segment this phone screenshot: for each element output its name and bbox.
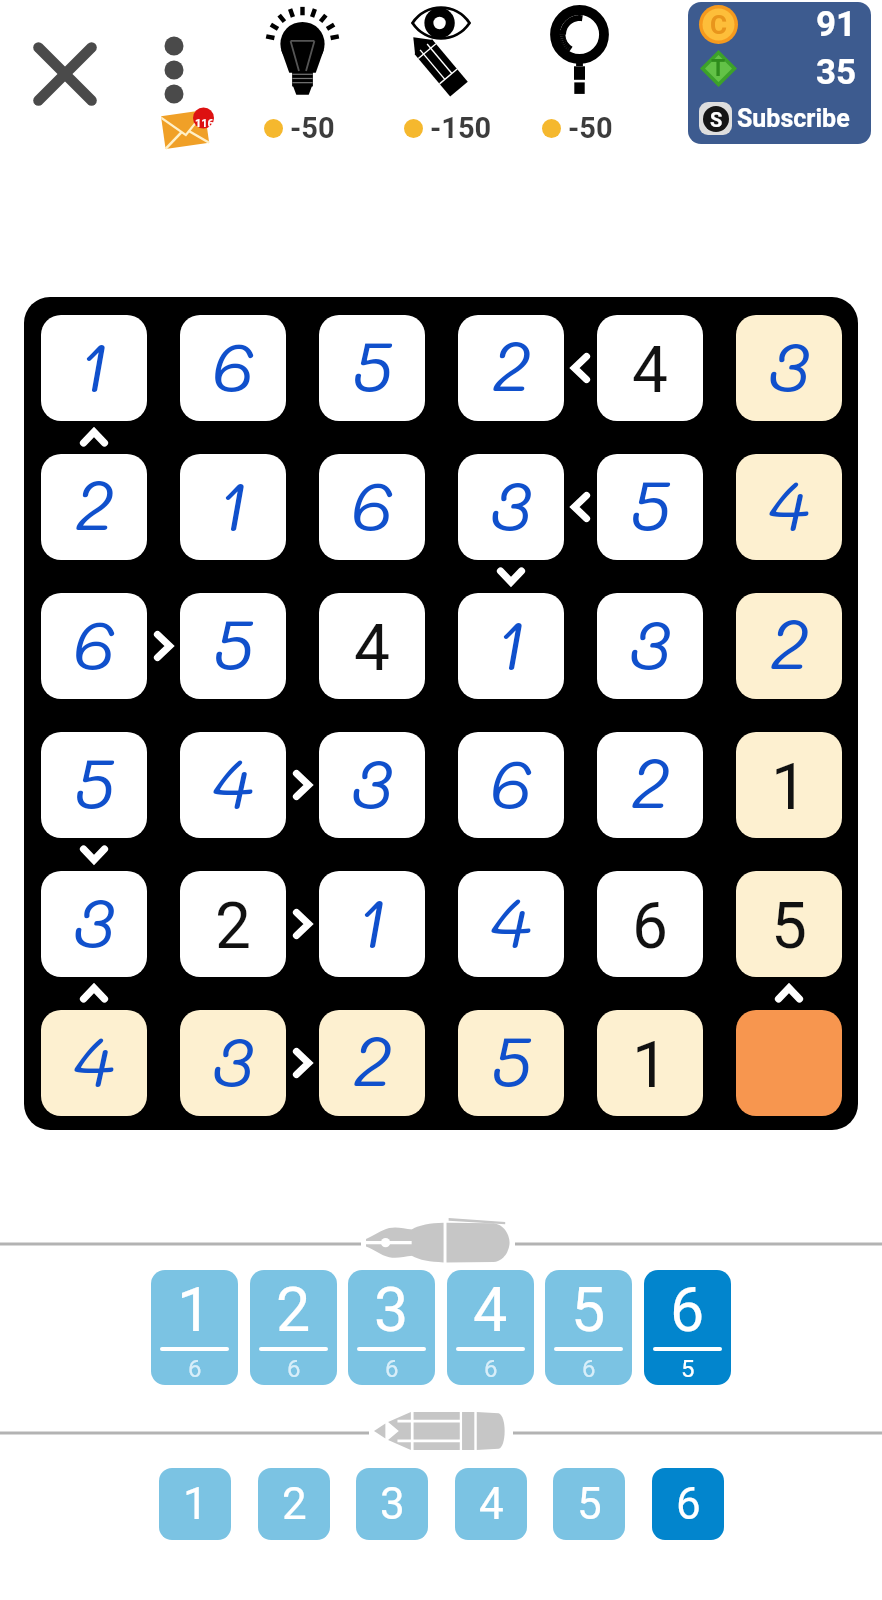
staticText: 6 — [582, 1355, 596, 1383]
staticText: 3 — [629, 596, 671, 687]
staticText: 5 — [571, 1274, 606, 1345]
staticText: 5 — [630, 457, 671, 548]
button[interactable]: 2 — [258, 1468, 330, 1540]
button[interactable]: 5 — [180, 593, 286, 699]
staticText: 2 — [492, 318, 531, 409]
button[interactable]: 4 — [319, 593, 425, 699]
staticText: 4 — [73, 1013, 115, 1104]
button[interactable] — [736, 1010, 842, 1116]
staticText: 5 — [352, 318, 393, 409]
staticText: 1 — [632, 1028, 668, 1103]
staticText: S — [710, 108, 723, 131]
button[interactable]: 3 — [356, 1468, 428, 1540]
staticText: C — [710, 10, 728, 40]
staticText: 6 — [287, 1355, 301, 1383]
button[interactable]: 5 — [41, 732, 147, 838]
button[interactable]: 1 — [41, 315, 147, 421]
button[interactable]: 3 — [597, 593, 703, 699]
button[interactable]: 1 — [736, 732, 842, 838]
staticText: T — [711, 55, 726, 82]
button[interactable]: 2 — [736, 593, 842, 699]
staticText: 1 — [78, 318, 110, 409]
button[interactable]: 4 — [455, 1468, 527, 1540]
staticText: -50 — [290, 111, 335, 145]
button[interactable]: 2 — [41, 454, 147, 560]
button[interactable]: 2 — [597, 732, 703, 838]
staticText: 5 — [681, 1355, 695, 1383]
button[interactable]: 1 — [319, 871, 425, 977]
staticText: 2 — [276, 1274, 311, 1345]
staticText: 4 — [479, 1478, 504, 1530]
button[interactable]: Hint — [229, 0, 369, 148]
staticText: Subscribe — [737, 104, 850, 133]
button[interactable]: 6 — [458, 732, 564, 838]
button[interactable]: 6 — [652, 1468, 724, 1540]
button[interactable]: Reveal — [378, 0, 518, 148]
staticText: 1 — [356, 874, 388, 965]
button[interactable]: 4 — [736, 454, 842, 560]
button[interactable]: 5 — [597, 454, 703, 560]
button[interactable]: 6 — [319, 454, 425, 560]
button[interactable]: 5 — [319, 315, 425, 421]
button[interactable]: 6 — [180, 315, 286, 421]
button[interactable]: 6 — [597, 871, 703, 977]
button[interactable]: 5 — [553, 1468, 625, 1540]
button[interactable]: 2 — [180, 871, 286, 977]
staticText: 4 — [473, 1274, 508, 1345]
staticText: 6 — [676, 1478, 701, 1530]
button[interactable]: 3 — [180, 1010, 286, 1116]
button[interactable]: Check — [507, 0, 647, 148]
button[interactable]: Close — [10, 18, 120, 128]
button[interactable]: 4 — [447, 1270, 534, 1385]
button[interactable]: 2 — [319, 1010, 425, 1116]
staticText: -150 — [430, 111, 492, 145]
staticText: 5 — [213, 596, 254, 687]
button[interactable]: 1 — [458, 593, 564, 699]
staticText: 5 — [771, 889, 807, 964]
button[interactable]: 6 — [41, 593, 147, 699]
staticText: 2 — [770, 596, 809, 687]
staticText: 2 — [631, 735, 670, 826]
button[interactable]: 3 — [458, 454, 564, 560]
button[interactable]: 4 — [180, 732, 286, 838]
button[interactable]: More options — [140, 18, 240, 118]
staticText: 3 — [490, 457, 532, 548]
button[interactable]: 3 — [319, 732, 425, 838]
staticText: 6 — [490, 735, 533, 826]
staticText: 1 — [183, 1478, 208, 1530]
staticText: 91 — [816, 4, 857, 45]
button[interactable]: 5 — [736, 871, 842, 977]
button[interactable]: 1 — [151, 1270, 238, 1385]
button[interactable]: 4 — [597, 315, 703, 421]
button[interactable]: C — [688, 2, 871, 144]
button[interactable]: 4 — [458, 871, 564, 977]
button[interactable]: 2 — [250, 1270, 337, 1385]
button[interactable]: 6 — [644, 1270, 731, 1385]
staticText: 2 — [353, 1013, 392, 1104]
button[interactable]: 2 — [458, 315, 564, 421]
button[interactable]: 3 — [736, 315, 842, 421]
button[interactable]: 1 — [159, 1468, 231, 1540]
button[interactable]: 5 — [458, 1010, 564, 1116]
staticText: -50 — [568, 111, 613, 145]
button[interactable]: 4 — [41, 1010, 147, 1116]
button[interactable]: 3 — [41, 871, 147, 977]
staticText: 4 — [632, 333, 668, 408]
staticText: 3 — [768, 318, 810, 409]
button[interactable]: 1 — [597, 1010, 703, 1116]
staticText: 1 — [495, 596, 527, 687]
button[interactable]: 5 — [545, 1270, 632, 1385]
staticText: 1 — [771, 750, 807, 825]
staticText: 35 — [816, 52, 857, 93]
staticText: 3 — [351, 735, 393, 826]
staticText: 3 — [73, 874, 115, 965]
staticText: 4 — [354, 611, 390, 686]
staticText: 6 — [632, 889, 668, 964]
staticText: 116 — [195, 117, 214, 130]
staticText: 2 — [75, 457, 114, 548]
button[interactable]: 3 — [348, 1270, 435, 1385]
staticText: 4 — [768, 457, 810, 548]
button[interactable]: 1 — [180, 454, 286, 560]
staticText: 6 — [188, 1355, 202, 1383]
staticText: 5 — [491, 1013, 532, 1104]
